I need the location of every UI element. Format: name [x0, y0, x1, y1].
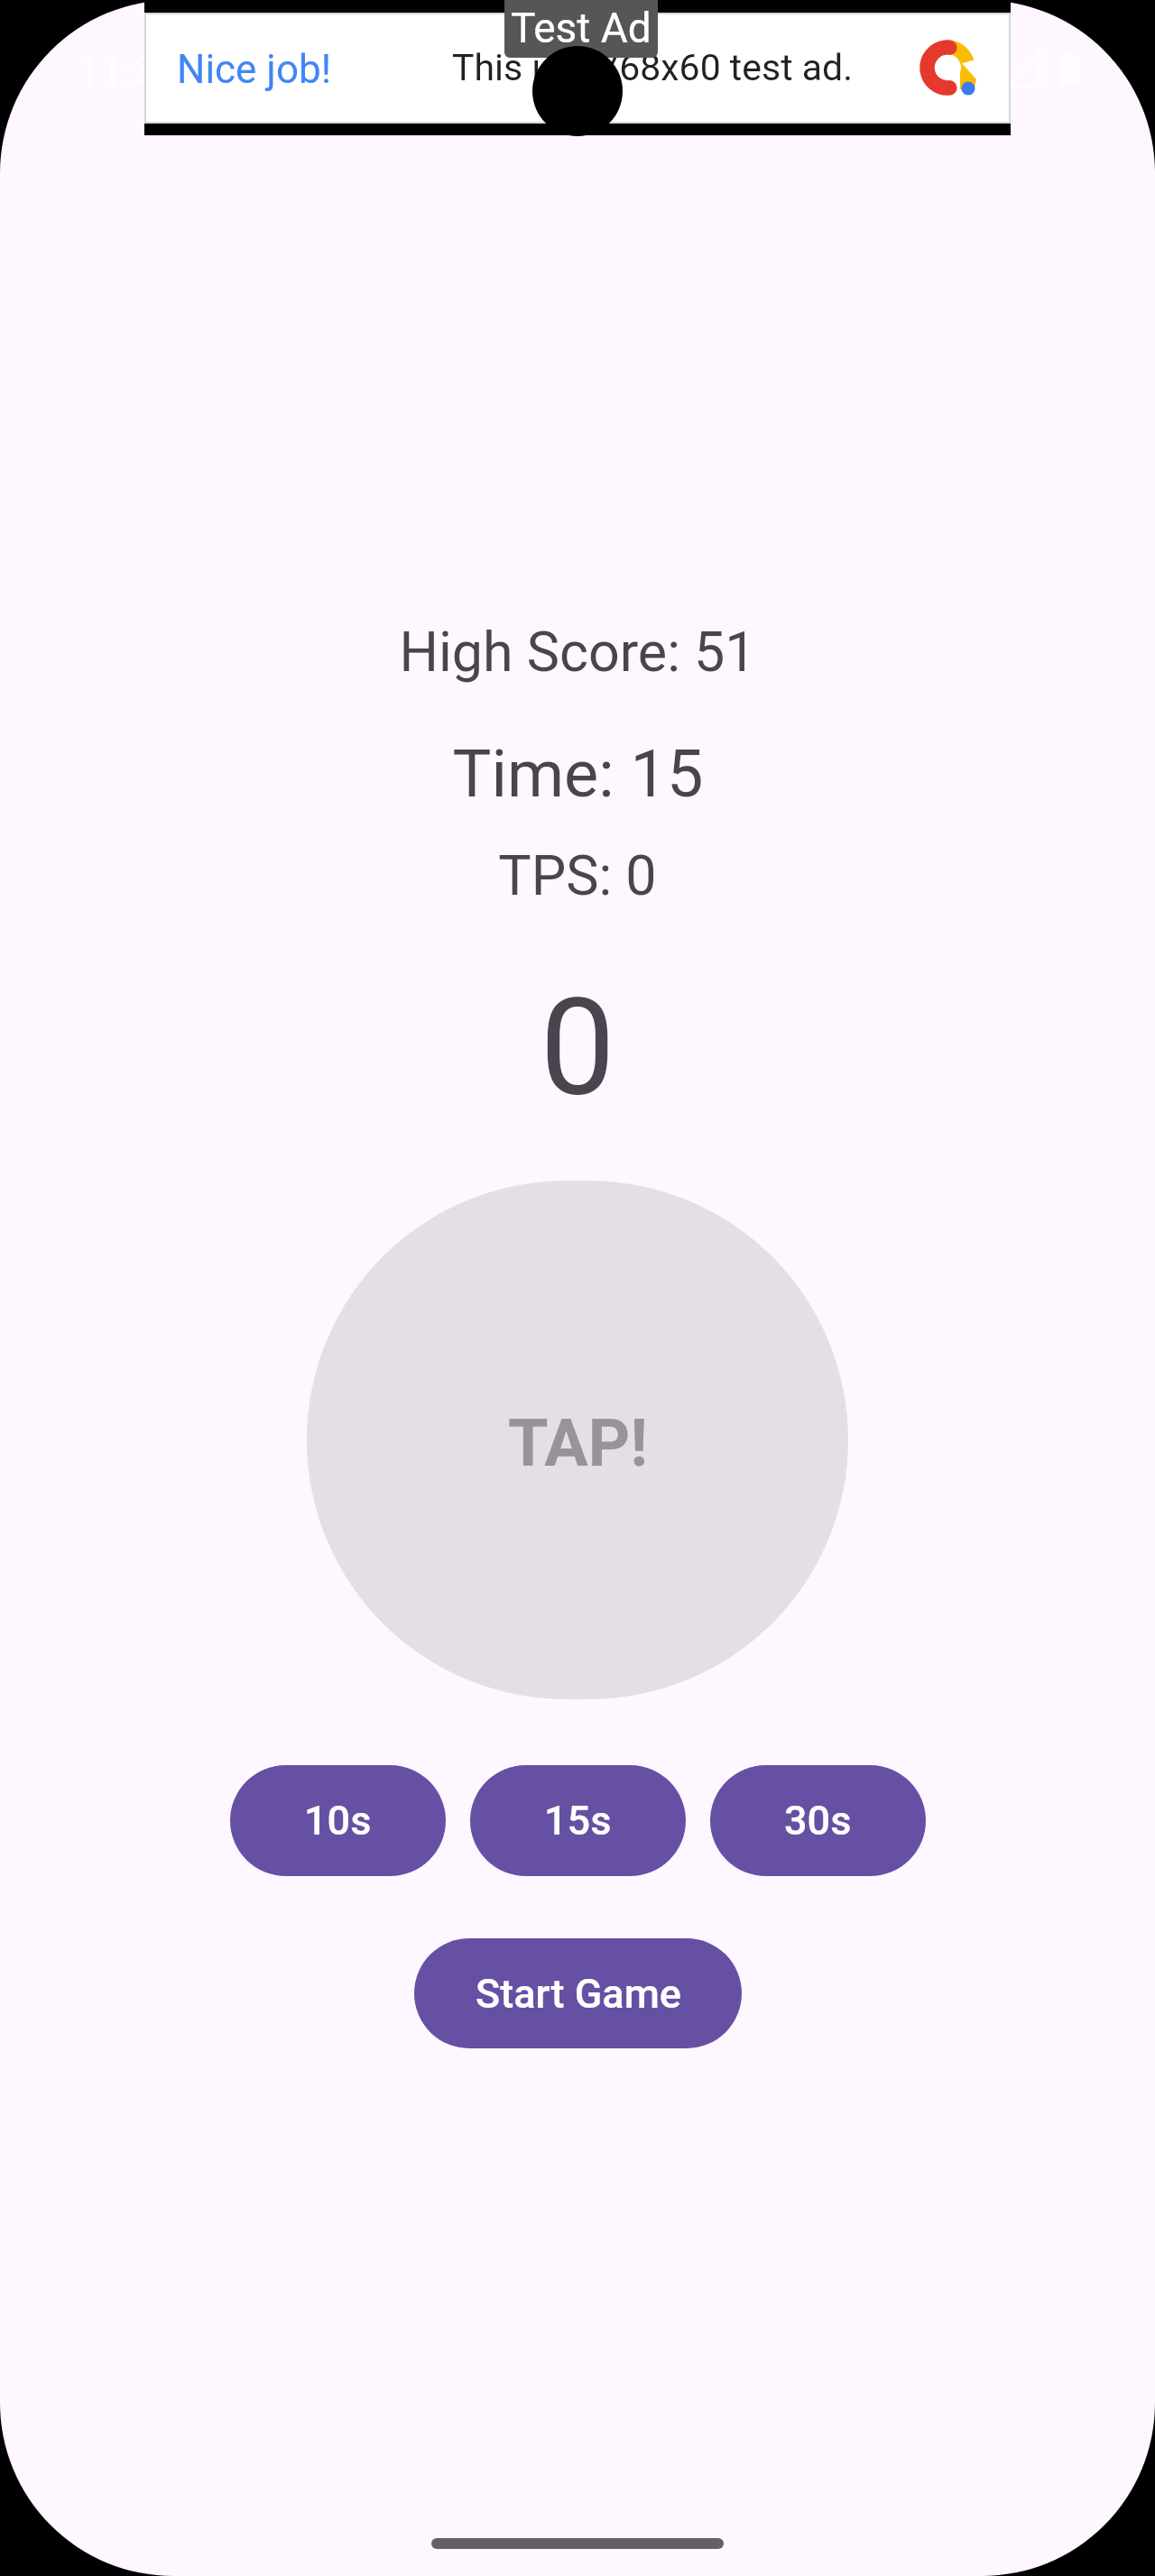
button[interactable]: Tap target	[307, 1181, 848, 1699]
staticText: 30s	[784, 1797, 852, 1845]
button[interactable]: Nice job!	[144, 13, 1011, 124]
staticText: This is a 768x60 test ad.	[452, 46, 853, 89]
staticText: TAP!	[508, 1405, 648, 1481]
staticText: 10s	[304, 1797, 372, 1845]
staticText: 0	[540, 971, 615, 1127]
button[interactable]: 10s	[230, 1765, 446, 1876]
staticText: Time: 15	[452, 736, 704, 812]
staticText: High Score: 51	[399, 620, 756, 684]
staticText: TPS: 0	[498, 843, 657, 907]
button[interactable]: 30s	[710, 1765, 926, 1876]
staticText: 11:39	[78, 48, 179, 95]
staticText: Test Ad	[511, 4, 651, 52]
staticText: 15s	[544, 1797, 612, 1845]
staticText: Nice job!	[177, 46, 332, 93]
button[interactable]: Start Game	[414, 1938, 742, 2048]
button[interactable]: 15s	[470, 1765, 686, 1876]
other: AdMob	[919, 40, 977, 97]
staticText: Start Game	[476, 1970, 681, 2018]
